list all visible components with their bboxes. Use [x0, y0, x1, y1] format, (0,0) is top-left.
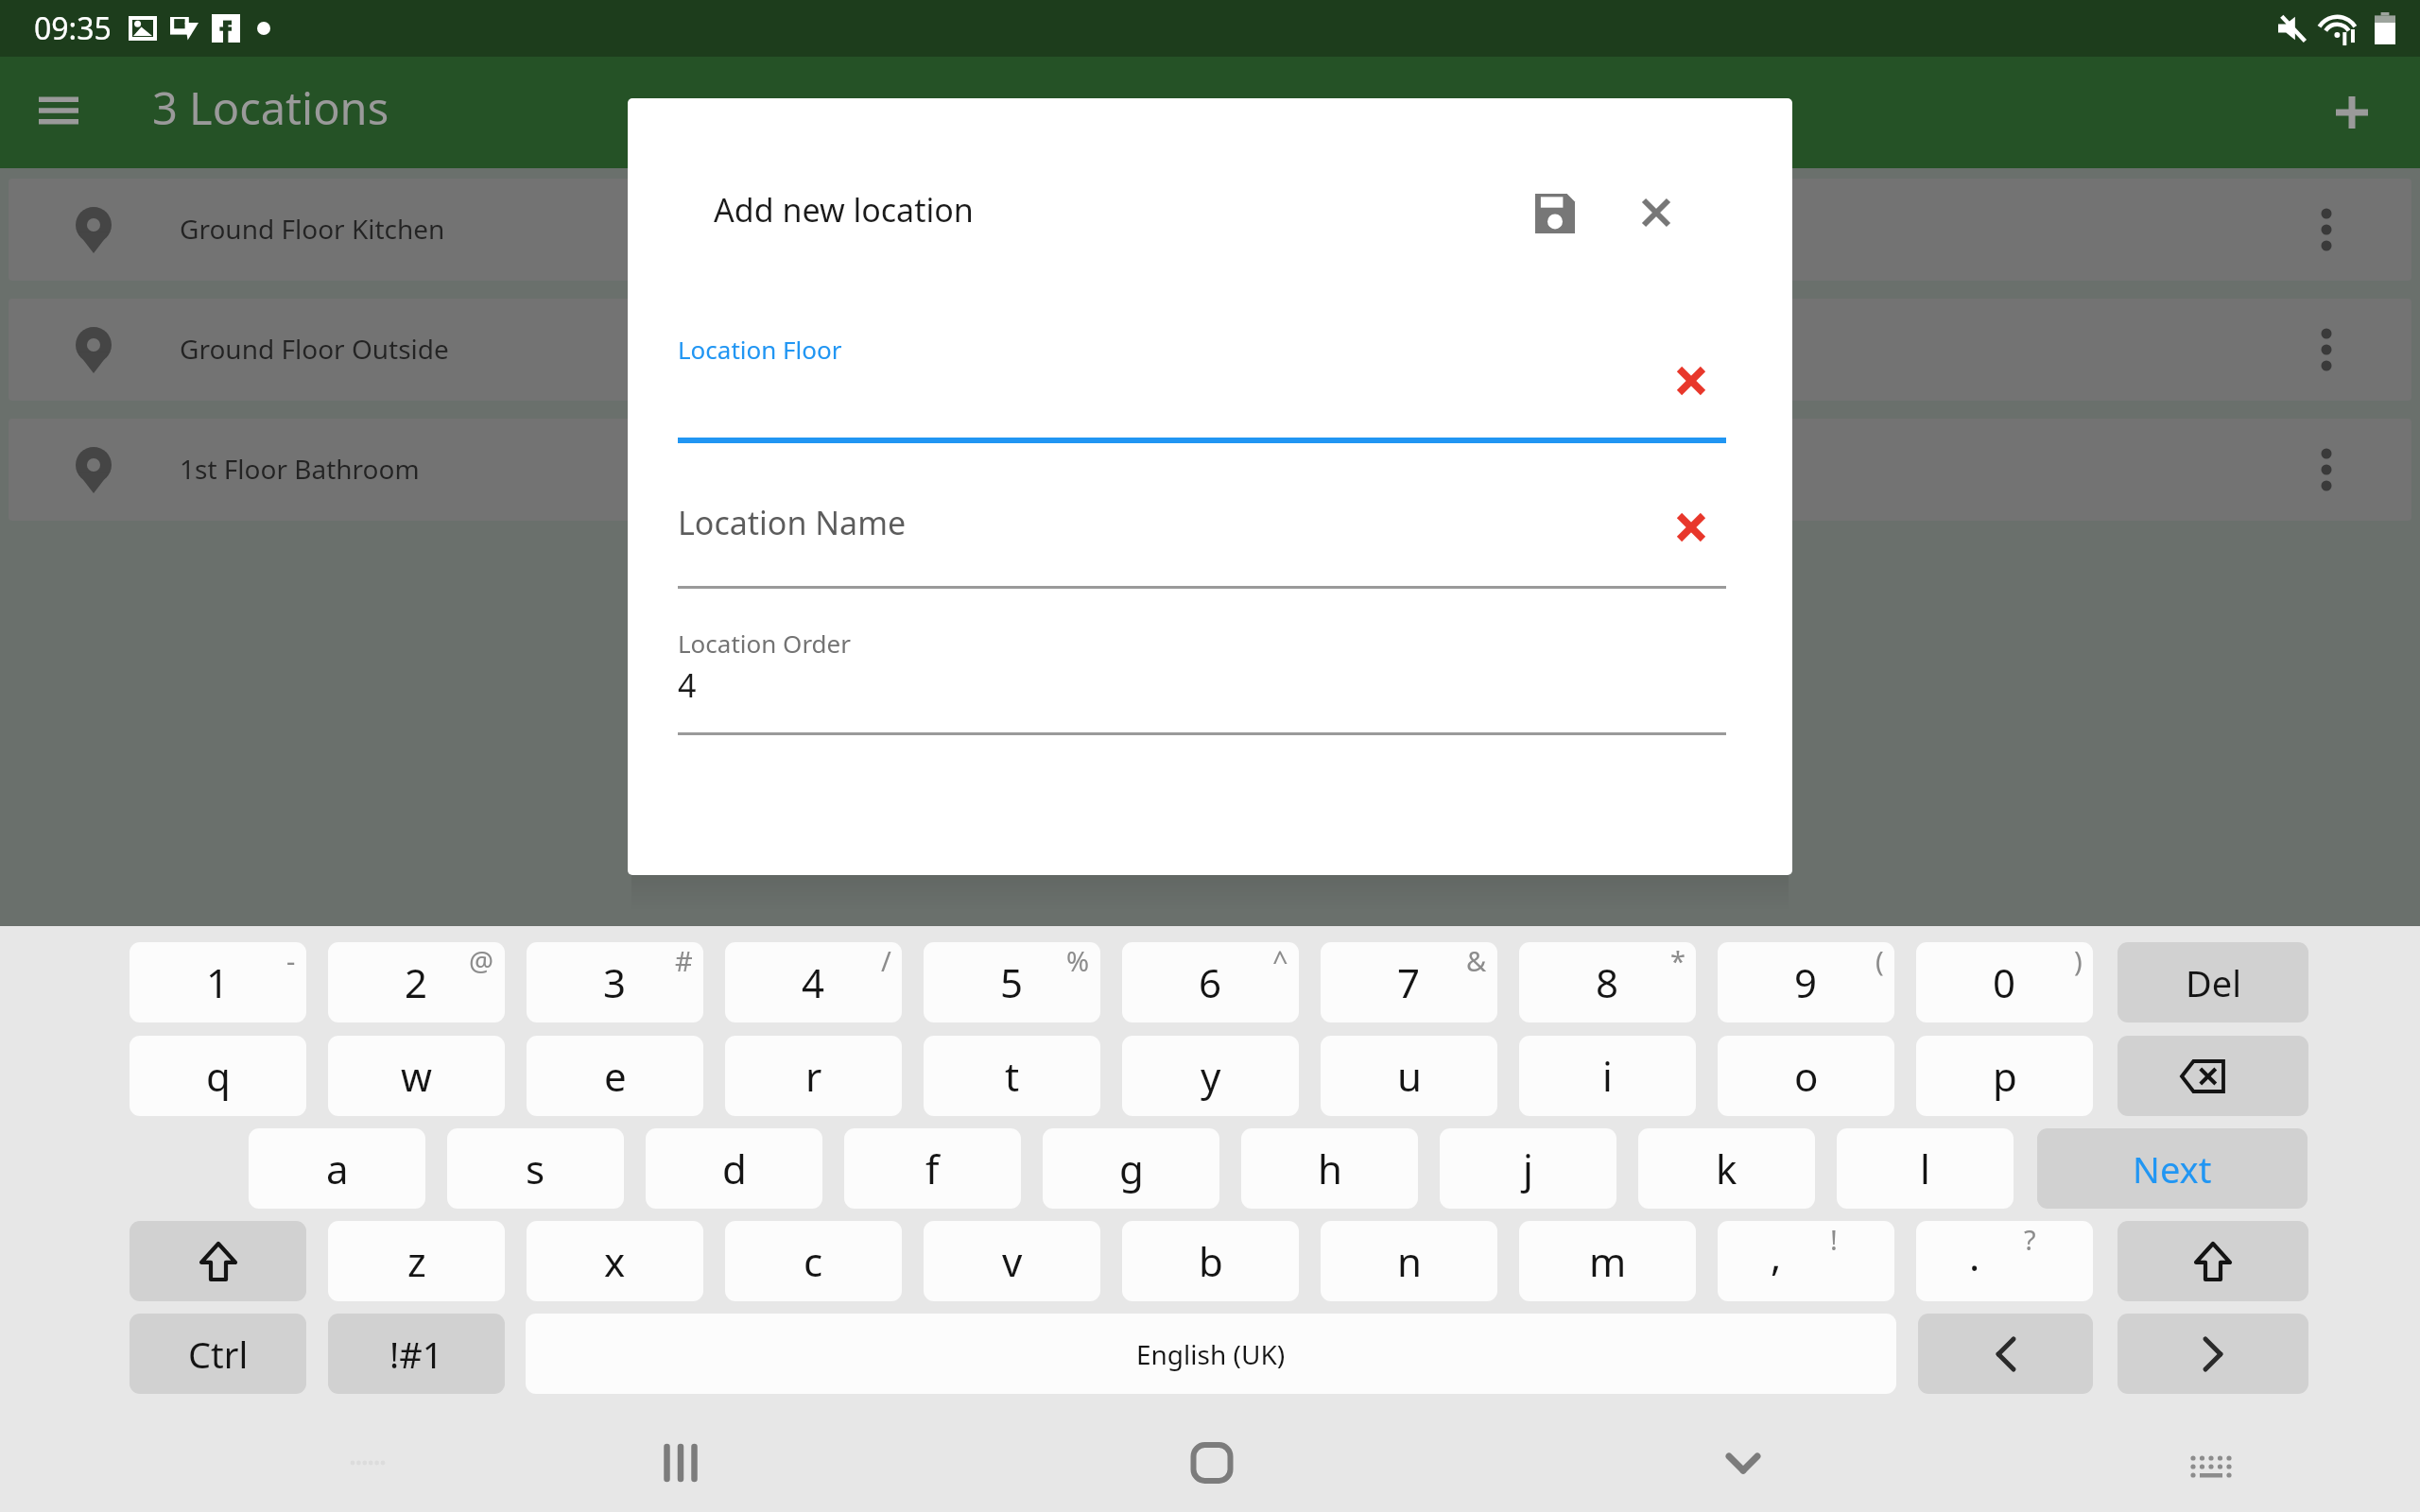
- button[interactable]: Add: [2318, 78, 2386, 146]
- button[interactable]: Next: [2037, 1128, 2308, 1209]
- staticText: Location Order: [678, 627, 851, 660]
- staticText: b: [1199, 1234, 1223, 1288]
- staticText: r: [805, 1049, 822, 1103]
- staticText: English (UK): [1136, 1336, 1286, 1372]
- button[interactable]: h: [1241, 1128, 1418, 1209]
- button[interactable]: Recents: [629, 1411, 733, 1512]
- staticText: -: [286, 942, 296, 979]
- button[interactable]: More options: [2298, 321, 2355, 378]
- button[interactable]: 1st Floor Bathroom: [9, 419, 2411, 521]
- button[interactable]: Ctrl: [130, 1314, 306, 1394]
- staticText: Del: [2186, 958, 2241, 1007]
- staticText: Ground Floor Kitchen: [180, 211, 445, 247]
- button[interactable]: q: [130, 1036, 306, 1116]
- button[interactable]: Menu: [25, 78, 93, 146]
- button[interactable]: j: [1440, 1128, 1616, 1209]
- button[interactable]: 2: [328, 942, 505, 1022]
- button[interactable]: ,: [1718, 1221, 1894, 1301]
- staticText: a: [326, 1142, 349, 1195]
- staticText: f: [925, 1142, 940, 1195]
- button[interactable]: d: [646, 1128, 822, 1209]
- button[interactable]: [2117, 1221, 2308, 1301]
- staticText: 3 Locations: [152, 77, 389, 138]
- button[interactable]: Clear: [1658, 494, 1724, 560]
- button[interactable]: e: [527, 1036, 703, 1116]
- button[interactable]: k: [1638, 1128, 1815, 1209]
- button[interactable]: More options: [2298, 441, 2355, 498]
- button[interactable]: u: [1321, 1036, 1497, 1116]
- staticText: m: [1589, 1234, 1627, 1288]
- staticText: q: [206, 1049, 231, 1103]
- staticText: /: [881, 942, 891, 979]
- button[interactable]: 7: [1321, 942, 1497, 1022]
- button[interactable]: s: [447, 1128, 624, 1209]
- staticText: ?: [2024, 1221, 2036, 1258]
- button[interactable]: a: [249, 1128, 425, 1209]
- button[interactable]: [130, 1221, 306, 1301]
- button[interactable]: w: [328, 1036, 505, 1116]
- button[interactable]: English (UK): [526, 1314, 1896, 1394]
- button[interactable]: r: [725, 1036, 902, 1116]
- button[interactable]: f: [844, 1128, 1021, 1209]
- staticText: ^: [1272, 942, 1288, 979]
- button[interactable]: Clear: [1658, 348, 1724, 414]
- button[interactable]: m: [1519, 1221, 1696, 1301]
- button[interactable]: p: [1916, 1036, 2093, 1116]
- button[interactable]: 4: [725, 942, 902, 1022]
- staticText: ): [2074, 942, 2083, 979]
- button[interactable]: Hide keyboard: [1691, 1411, 1795, 1512]
- button[interactable]: t: [924, 1036, 1100, 1116]
- button[interactable]: Save: [1519, 178, 1591, 249]
- button[interactable]: z: [328, 1221, 505, 1301]
- button[interactable]: x: [527, 1221, 703, 1301]
- button[interactable]: [2117, 1314, 2308, 1394]
- staticText: Next: [2133, 1144, 2212, 1194]
- button[interactable]: .: [1916, 1221, 2093, 1301]
- staticText: !#1: [389, 1330, 443, 1379]
- button[interactable]: Ground Floor Outside: [9, 299, 2411, 401]
- button[interactable]: Keyboard layout: [2159, 1415, 2263, 1512]
- button[interactable]: 5: [924, 942, 1100, 1022]
- button[interactable]: i: [1519, 1036, 1696, 1116]
- button[interactable]: 3: [527, 942, 703, 1022]
- button[interactable]: 0: [1916, 942, 2093, 1022]
- button[interactable]: [1918, 1314, 2093, 1394]
- button[interactable]: 1: [130, 942, 306, 1022]
- staticText: #: [675, 942, 693, 979]
- staticText: t: [1005, 1049, 1020, 1103]
- button[interactable]: Ground Floor Kitchen: [9, 179, 2411, 281]
- staticText: h: [1318, 1142, 1342, 1195]
- button[interactable]: Close: [1620, 177, 1692, 249]
- button[interactable]: n: [1321, 1221, 1497, 1301]
- staticText: .: [1969, 1228, 1980, 1282]
- button[interactable]: More options: [2298, 201, 2355, 258]
- staticText: z: [407, 1234, 426, 1288]
- staticText: y: [1201, 1049, 1221, 1103]
- staticText: 09:35: [34, 8, 112, 49]
- button[interactable]: l: [1837, 1128, 2014, 1209]
- button[interactable]: [2117, 1036, 2308, 1116]
- staticText: 4: [678, 663, 697, 707]
- staticText: v: [1002, 1234, 1023, 1288]
- button[interactable]: b: [1122, 1221, 1299, 1301]
- staticText: @: [469, 942, 494, 979]
- button[interactable]: y: [1122, 1036, 1299, 1116]
- staticText: Location Floor: [678, 333, 842, 366]
- button[interactable]: 8: [1519, 942, 1696, 1022]
- button[interactable]: c: [725, 1221, 902, 1301]
- staticText: 4: [802, 955, 825, 1009]
- button[interactable]: o: [1718, 1036, 1894, 1116]
- staticText: 0: [1993, 955, 2016, 1009]
- button[interactable]: !#1: [328, 1314, 505, 1394]
- staticText: *: [1670, 942, 1685, 979]
- button[interactable]: Home: [1160, 1411, 1264, 1512]
- staticText: 1: [206, 955, 230, 1009]
- staticText: 8: [1596, 955, 1619, 1009]
- staticText: i: [1602, 1049, 1613, 1103]
- button[interactable]: 6: [1122, 942, 1299, 1022]
- button[interactable]: g: [1043, 1128, 1219, 1209]
- staticText: g: [1119, 1142, 1144, 1195]
- button[interactable]: v: [924, 1221, 1100, 1301]
- button[interactable]: Del: [2117, 942, 2308, 1022]
- button[interactable]: 9: [1718, 942, 1894, 1022]
